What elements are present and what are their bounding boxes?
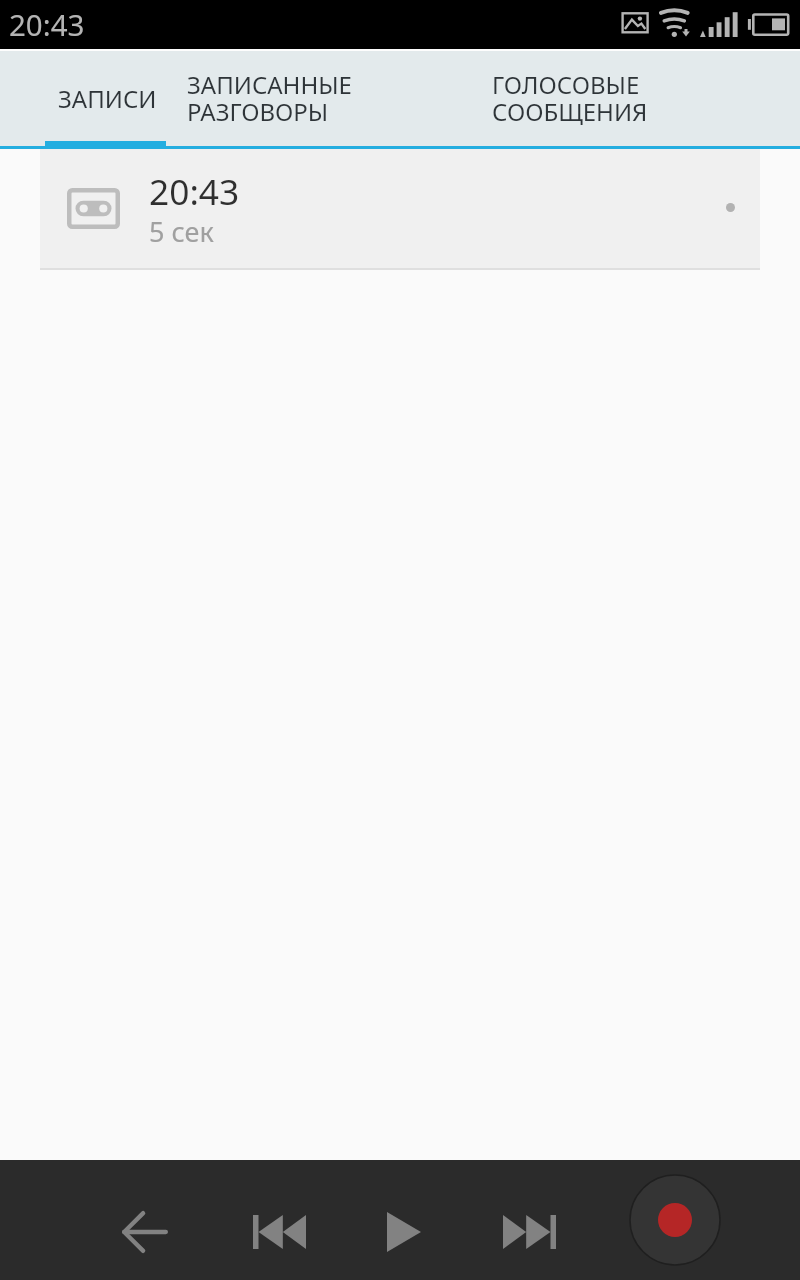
button[interactable]: 20:43 bbox=[40, 149, 760, 268]
staticText: 5 сек bbox=[149, 213, 214, 250]
button[interactable]: Record bbox=[629, 1174, 721, 1266]
staticText: СООБЩЕНИЯ bbox=[492, 95, 648, 128]
staticText: 20:43 bbox=[149, 167, 240, 215]
staticText: ГОЛОСОВЫЕ bbox=[492, 68, 640, 101]
button[interactable]: Play bbox=[359, 1187, 449, 1277]
staticText: 20:43 bbox=[9, 4, 85, 44]
button[interactable]: ЗАПИСАННЫЕ bbox=[170, 51, 360, 149]
button[interactable]: Previous bbox=[229, 1187, 329, 1277]
button[interactable]: ЗАПИСИ bbox=[0, 51, 211, 149]
button[interactable]: Back bbox=[100, 1187, 190, 1277]
button[interactable]: ГОЛОСОВЫЕ bbox=[476, 51, 666, 149]
staticText: ЗАПИСАННЫЕ bbox=[187, 68, 352, 101]
staticText: РАЗГОВОРЫ bbox=[187, 95, 329, 128]
staticText: ЗАПИСИ bbox=[58, 82, 157, 115]
button[interactable]: Next bbox=[479, 1187, 579, 1277]
